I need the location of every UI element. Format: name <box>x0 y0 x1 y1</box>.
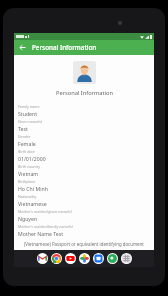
staticText: 01/01/2000 <box>18 155 46 162</box>
button[interactable]: Family name <box>18 104 150 119</box>
staticText: Personal Information <box>32 43 97 52</box>
staticText: Birth date <box>18 149 35 154</box>
staticText: Vietnam <box>18 170 39 177</box>
staticText: Birth country <box>18 164 41 169</box>
button[interactable]: Gmail <box>37 253 48 264</box>
staticText: Birthplace <box>18 179 36 184</box>
button[interactable]: Birth country <box>18 164 150 179</box>
staticText: Family name <box>18 104 40 109</box>
staticText: Nationality <box>18 194 37 199</box>
button[interactable]: Mother's maiden/given name(s) <box>18 209 150 224</box>
button[interactable]: Birth date <box>18 149 150 164</box>
button[interactable]: WhatsApp <box>107 253 118 264</box>
staticText: Given name(s) <box>18 119 43 124</box>
staticText: Ho Chi Minh <box>18 185 48 192</box>
staticText: Test <box>18 125 28 132</box>
staticText: Female <box>18 140 36 147</box>
button[interactable]: Nationality <box>18 194 150 209</box>
staticText: Vietnamese <box>18 200 47 207</box>
button[interactable]: Chrome <box>51 253 62 264</box>
staticText: Mother Name Test <box>18 230 64 237</box>
staticText: Student <box>18 110 38 117</box>
staticText: Mother's maiden/family name(s) <box>18 224 73 229</box>
button[interactable]: Profile photo <box>73 61 96 84</box>
button[interactable]: Birthplace <box>18 179 150 194</box>
button[interactable]: Gender <box>18 134 150 149</box>
button[interactable]: Back <box>17 42 28 53</box>
staticText: Nguyen <box>18 215 38 222</box>
button[interactable]: Photos <box>79 253 90 264</box>
button[interactable]: Given name(s) <box>18 119 150 134</box>
button[interactable]: Drive <box>93 253 104 264</box>
staticText: Personal Information <box>56 89 113 97</box>
button[interactable]: YouTube <box>65 253 76 264</box>
button[interactable]: Calculator <box>121 253 132 264</box>
staticText: Mother's maiden/given name(s) <box>18 209 72 214</box>
staticText: Gender <box>18 134 31 139</box>
button[interactable]: Mother's maiden/family name(s) <box>18 224 150 239</box>
staticText: (Vietnamese) Passport or equivalent iden… <box>24 241 144 247</box>
